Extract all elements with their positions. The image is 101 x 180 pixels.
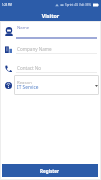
staticText: Contact No xyxy=(17,65,42,71)
staticText: IT Service xyxy=(17,84,39,91)
button[interactable]: Reason xyxy=(14,75,99,95)
staticText: Name xyxy=(17,24,30,30)
button[interactable]: Register xyxy=(2,164,98,177)
staticText: Visitor xyxy=(0,12,101,19)
staticText: Company Name xyxy=(17,46,52,52)
staticText: Sprint 4G Volt 36% xyxy=(65,3,92,7)
staticText: Reason xyxy=(17,79,32,85)
staticText: 1:25 PM xyxy=(2,3,12,7)
staticText: Register xyxy=(40,168,60,174)
